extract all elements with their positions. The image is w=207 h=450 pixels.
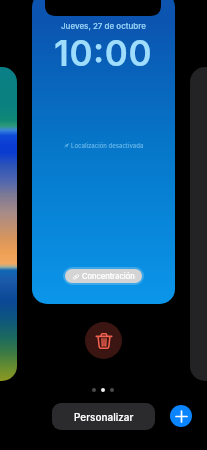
staticText: Jueves, 27 de octubre (61, 21, 146, 31)
button[interactable] (0, 67, 17, 381)
staticText: Personalizar (74, 411, 134, 423)
button[interactable]: Concentración (65, 269, 142, 283)
staticText: Concentración (82, 272, 135, 281)
button[interactable]: Eliminar (85, 322, 122, 359)
staticText: 10:00 (54, 32, 153, 74)
button[interactable] (190, 67, 207, 381)
staticText: Localización desactivada (71, 142, 144, 149)
button[interactable]: Jueves, 27 de octubre (32, 0, 175, 304)
button[interactable]: Añadir fondo de pantalla (170, 405, 192, 427)
button[interactable]: Personalizar (52, 403, 155, 430)
